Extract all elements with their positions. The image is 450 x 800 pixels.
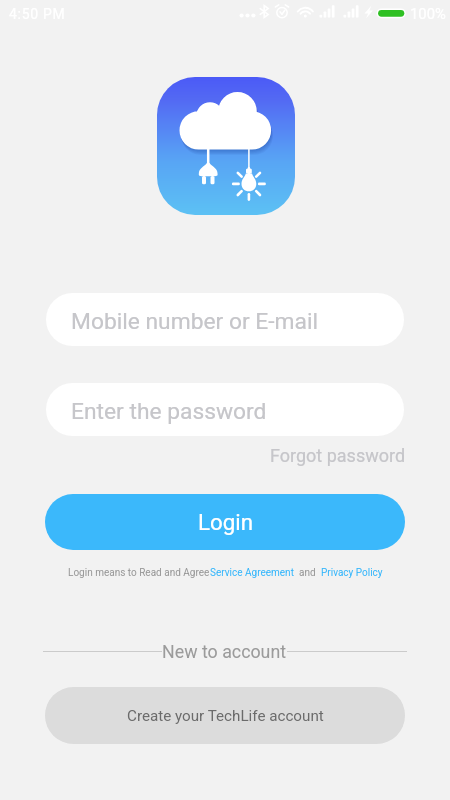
staticText: Forgot password <box>270 445 406 466</box>
staticText: 4:50 PM <box>9 6 66 22</box>
staticText: Login means to Read and Agree <box>68 567 210 579</box>
button[interactable]: Privacy Policy <box>321 567 383 579</box>
staticText: New to account <box>162 641 287 661</box>
staticText: and <box>294 567 321 579</box>
button[interactable]: Service Agreement <box>210 567 294 579</box>
staticText: Mobile number or E-mail <box>71 308 319 335</box>
staticText: Enter the password <box>71 398 267 425</box>
button[interactable]: Enter the password <box>46 383 404 436</box>
staticText: Create your TechLife account <box>127 707 324 725</box>
staticText: 100% <box>410 5 446 22</box>
button[interactable]: Forgot password <box>270 444 406 466</box>
staticText: Login <box>198 509 253 535</box>
button[interactable]: Login <box>45 494 405 550</box>
button[interactable]: Mobile number or E-mail <box>46 293 404 346</box>
button[interactable]: Create your TechLife account <box>45 687 405 744</box>
